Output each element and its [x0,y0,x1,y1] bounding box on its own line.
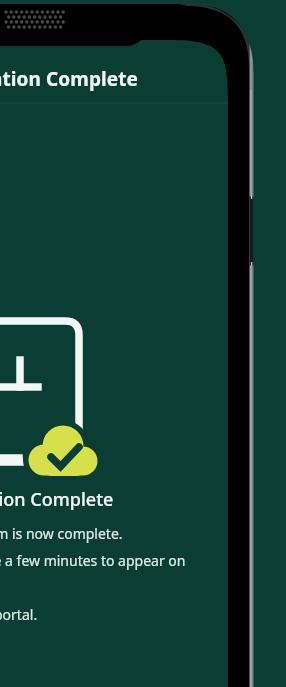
staticText: Your system is now complete. It may take… [0,524,208,624]
staticText: Installation Complete [0,66,139,92]
staticText: Installation Complete [0,487,114,512]
button[interactable]: Installation Complete [0,56,228,102]
